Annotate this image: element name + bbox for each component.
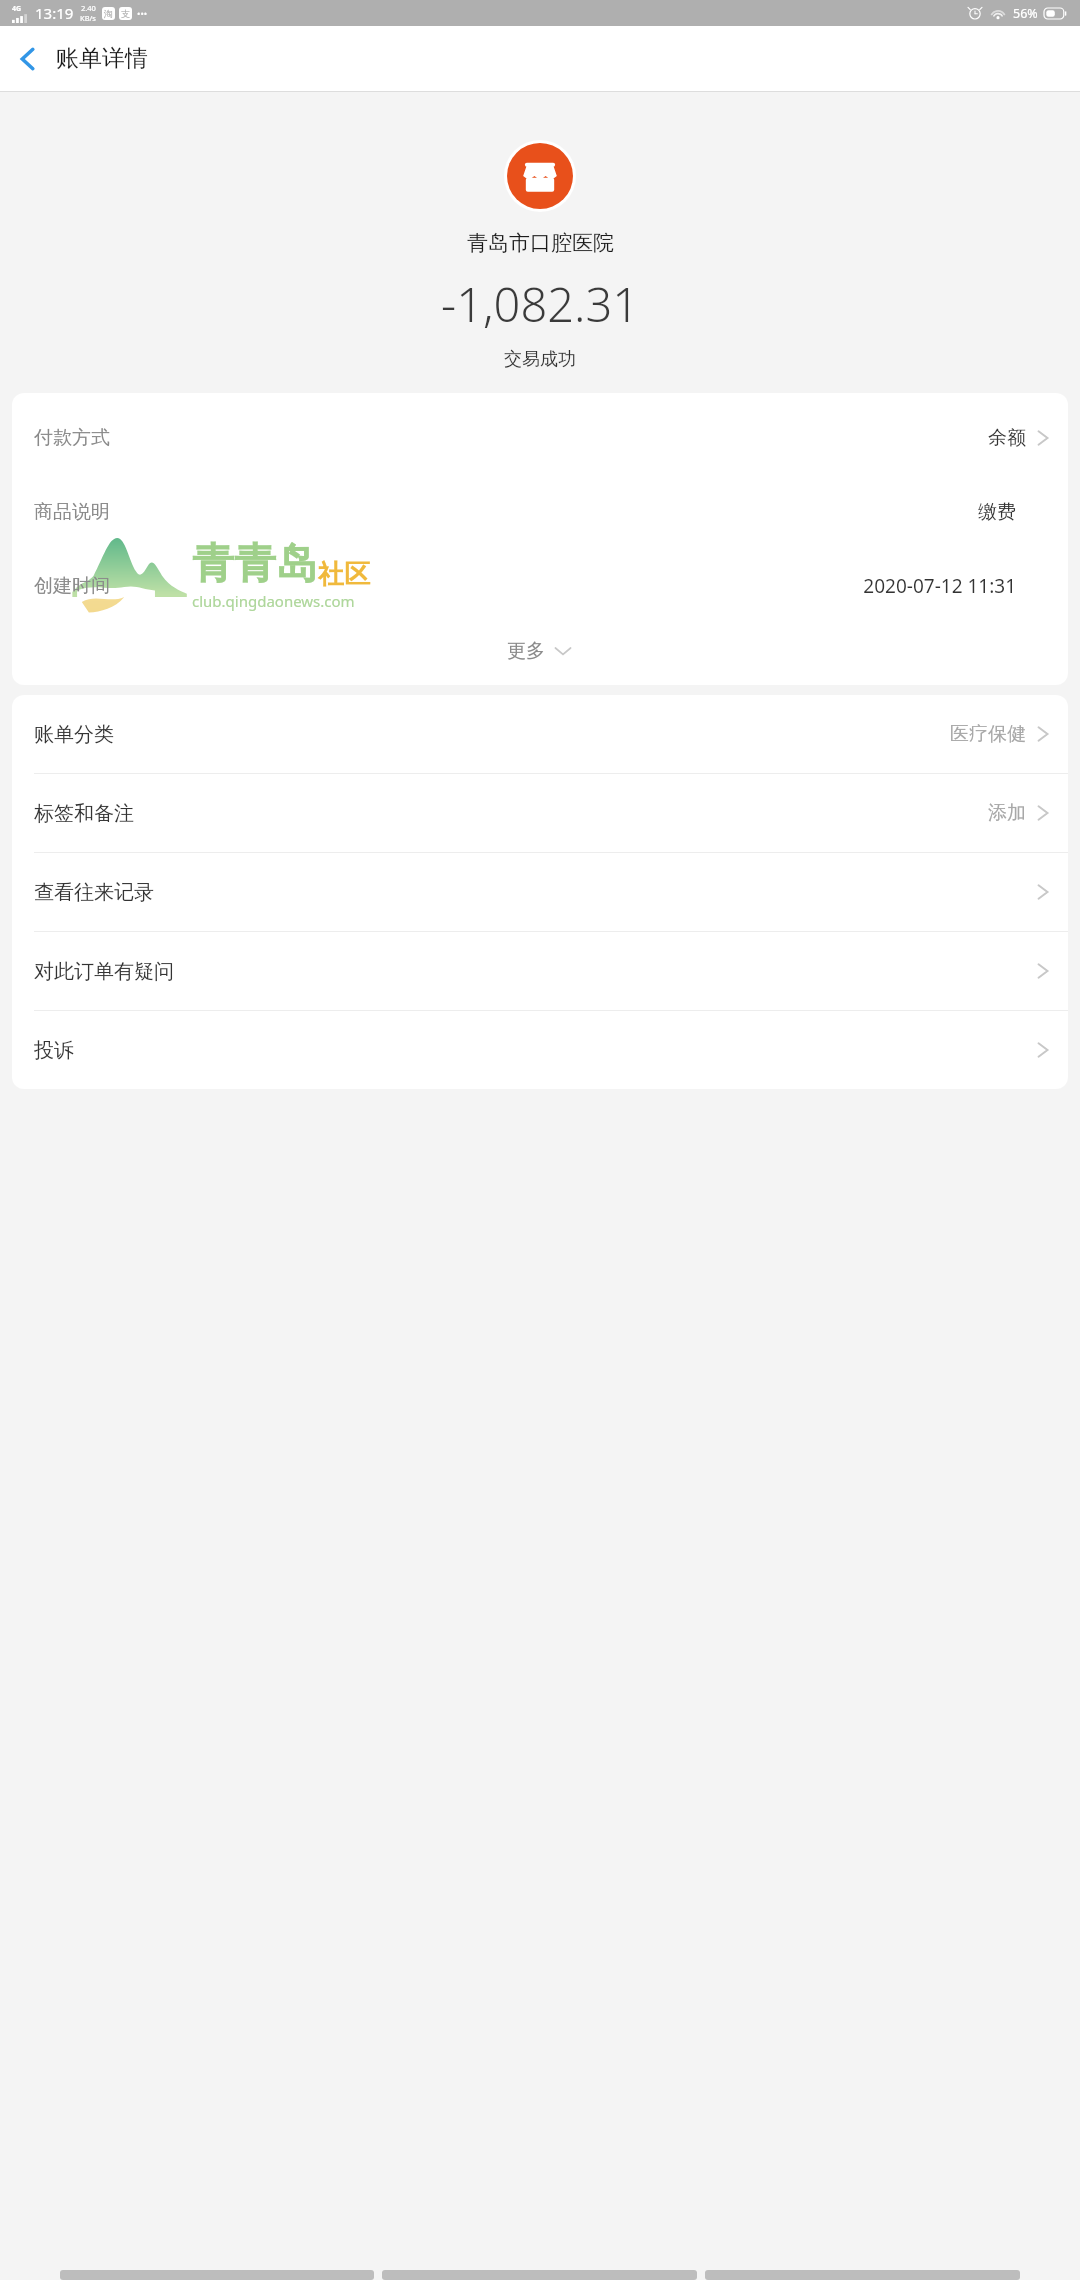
staticText: 支 (121, 8, 130, 19)
button[interactable]: 账单分类 (12, 695, 1068, 773)
staticText: 对此订单有疑问 (34, 959, 174, 984)
staticText: 青岛市口腔医院 (467, 230, 614, 256)
button[interactable]: 标签和备注 (12, 774, 1068, 852)
button[interactable]: 付款方式 (12, 401, 1068, 475)
button[interactable]: 商品说明 (12, 475, 1068, 549)
staticText: 医疗保健 (950, 722, 1026, 746)
staticText: 4G (12, 4, 22, 14)
button[interactable]: 查看往来记录 (12, 853, 1068, 931)
staticText: 付款方式 (34, 426, 110, 450)
staticText: 2020-07-12 11:31 (863, 573, 1016, 599)
button[interactable]: 对此订单有疑问 (12, 932, 1068, 1010)
staticText: 余额 (988, 426, 1026, 450)
staticText: -1,082.31 (441, 272, 640, 336)
staticText: 账单分类 (34, 722, 114, 747)
staticText: 2.40 (81, 3, 96, 13)
staticText: 账单详情 (56, 44, 148, 73)
staticText: 更多 (507, 639, 545, 663)
staticText: club.qingdaonews.com (192, 591, 355, 611)
staticText: 青青岛 (192, 538, 318, 591)
button[interactable]: 投诉 (12, 1011, 1068, 1089)
staticText: 投诉 (34, 1038, 74, 1063)
staticText: 商品说明 (34, 500, 110, 524)
staticText: 添加 (988, 801, 1026, 825)
staticText: 56% (1013, 5, 1038, 22)
staticText: 创建时间 (34, 574, 110, 598)
button[interactable]: Back (0, 31, 56, 87)
staticText: 缴费 (978, 500, 1016, 524)
button[interactable]: 更多 (12, 623, 1068, 679)
staticText: 查看往来记录 (34, 880, 154, 905)
staticText: ••• (137, 7, 148, 19)
staticText: 13:19 (35, 3, 74, 23)
staticText: 社区 (318, 558, 370, 591)
staticText: 淘 (104, 8, 113, 19)
staticText: KB/s (80, 13, 96, 23)
staticText: 标签和备注 (34, 801, 134, 826)
staticText: 交易成功 (504, 348, 576, 371)
button[interactable]: 创建时间 (12, 549, 1068, 623)
